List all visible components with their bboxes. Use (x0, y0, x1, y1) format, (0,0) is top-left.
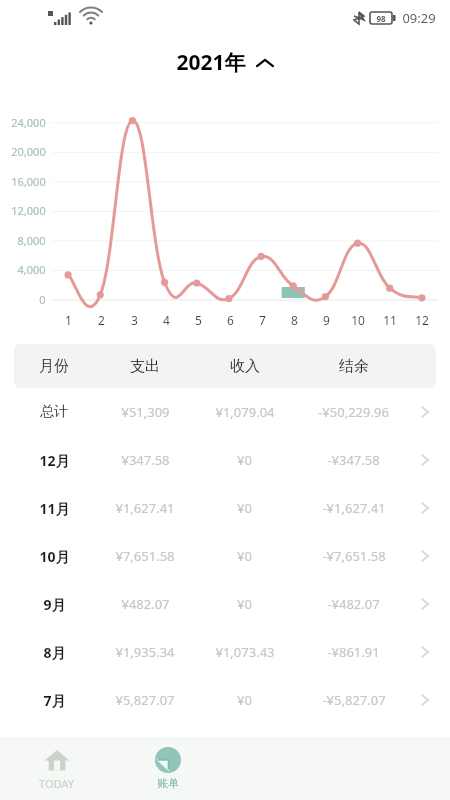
staticText: -¥482.07 (327, 595, 380, 613)
staticText: ¥0 (237, 595, 252, 613)
button[interactable]: 12月 (14, 436, 436, 484)
staticText: ¥0 (237, 547, 252, 565)
staticText: 11月 (39, 499, 70, 518)
staticText: 2 (98, 312, 105, 328)
staticText: ¥1,935.34 (115, 643, 175, 661)
staticText: 收入 (230, 357, 260, 376)
staticText: 5 (195, 312, 202, 328)
staticText: 结余 (339, 357, 369, 376)
staticText: 12,000 (11, 203, 46, 218)
staticText: 2021年 (176, 48, 246, 77)
staticText: ¥482.07 (121, 595, 170, 613)
staticText: -¥5,827.07 (322, 691, 386, 709)
staticText: 10月 (39, 547, 70, 566)
button[interactable]: 总计 (14, 388, 436, 436)
staticText: -¥347.58 (327, 451, 380, 469)
button[interactable]: 2021年 (0, 36, 450, 88)
staticText: -¥50,229.96 (318, 403, 389, 421)
staticText: 4,000 (17, 262, 46, 277)
staticText: 账单 (157, 776, 179, 790)
staticText: 7月 (43, 691, 66, 710)
button[interactable]: 11月 (14, 484, 436, 532)
staticText: 9月 (43, 595, 66, 614)
staticText: 总计 (40, 403, 68, 421)
staticText: 7 (259, 312, 266, 328)
staticText: 0 (39, 292, 46, 307)
staticText: 16,000 (11, 174, 46, 189)
staticText: 8 (291, 312, 298, 328)
staticText: ¥1,079.04 (215, 403, 275, 421)
staticText: ¥0 (237, 691, 252, 709)
staticText: 1 (65, 312, 72, 328)
button[interactable]: 7月 (14, 676, 436, 724)
staticText: 12 (415, 312, 429, 328)
staticText: ¥7,651.58 (115, 547, 175, 565)
staticText: ¥1,627.41 (115, 499, 175, 517)
staticText: 10 (351, 312, 365, 328)
staticText: ¥1,073.43 (215, 643, 275, 661)
staticText: 9 (323, 312, 330, 328)
staticText: 月份 (39, 357, 69, 376)
staticText: 6 (227, 312, 234, 328)
staticText: 8月 (43, 643, 66, 662)
staticText: 3 (131, 312, 138, 328)
button[interactable]: 8月 (14, 628, 436, 676)
staticText: 20,000 (11, 144, 46, 159)
staticText: 6月 (43, 739, 66, 758)
staticText: 24,000 (11, 115, 46, 130)
staticText: 4 (163, 312, 170, 328)
staticText: -¥1,627.41 (322, 499, 386, 517)
staticText: -¥7,651.58 (322, 547, 386, 565)
staticText: ¥51,309 (121, 403, 170, 421)
staticText: 支出 (130, 357, 160, 376)
button[interactable]: 账单 (112, 737, 224, 800)
staticText: ¥0 (237, 499, 252, 517)
button[interactable]: 9月 (14, 580, 436, 628)
staticText: ¥5,827.07 (115, 691, 175, 709)
staticText: TODAY (39, 776, 74, 791)
staticText: 8,000 (17, 233, 46, 248)
staticText: 09:29 (402, 9, 436, 27)
staticText: 98 (376, 13, 386, 24)
button[interactable]: 6月 (14, 724, 436, 772)
staticText: 11 (383, 312, 397, 328)
staticText: ¥0 (237, 451, 252, 469)
button[interactable]: 10月 (14, 532, 436, 580)
staticText: -¥861.91 (327, 643, 380, 661)
button[interactable]: TODAY (0, 737, 112, 800)
staticText: ¥347.58 (121, 451, 170, 469)
staticText: ¥254.19 (121, 739, 170, 757)
staticText: 12月 (39, 451, 70, 470)
